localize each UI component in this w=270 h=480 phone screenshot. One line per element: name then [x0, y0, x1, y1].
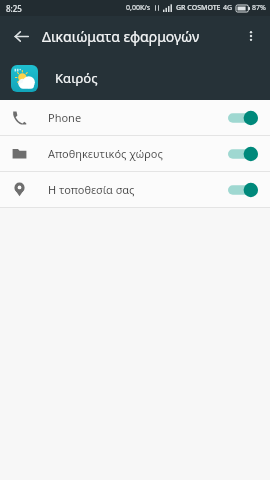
staticText: Phone — [48, 110, 222, 125]
staticText: Καιρός — [55, 69, 98, 87]
button[interactable]: Καιρός — [0, 56, 270, 100]
button[interactable]: On — [228, 145, 258, 163]
staticText: 0,00K/s — [126, 3, 151, 13]
staticText: GR COSMOTE — [176, 3, 221, 13]
button[interactable]: Η τοποθεσία σας — [0, 172, 270, 207]
button[interactable]: More options — [234, 19, 268, 53]
button[interactable]: Phone — [0, 100, 270, 135]
button[interactable]: Αποθηκευτικός χώρος — [0, 136, 270, 171]
button[interactable]: On — [228, 181, 258, 199]
staticText: 8:25 — [6, 3, 22, 14]
button[interactable]: On — [228, 109, 258, 127]
button[interactable]: Back — [4, 19, 38, 53]
staticText: 87% — [252, 3, 266, 13]
staticText: 4G — [223, 3, 233, 13]
staticText: Η τοποθεσία σας — [48, 182, 222, 197]
staticText: Αποθηκευτικός χώρος — [48, 146, 222, 161]
staticText: Δικαιώματα εφαρμογών — [42, 27, 234, 46]
